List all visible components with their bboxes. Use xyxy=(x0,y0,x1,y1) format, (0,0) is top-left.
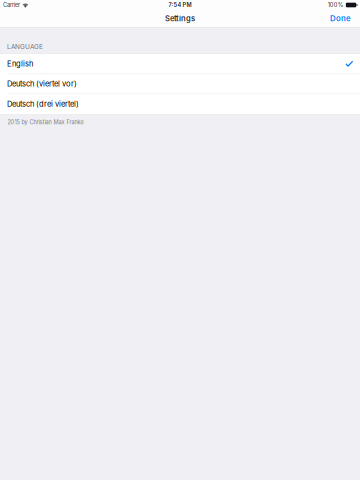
staticText: 7:54 PM xyxy=(168,2,191,8)
staticText: 100% xyxy=(328,1,344,8)
button[interactable]: English xyxy=(0,54,360,74)
staticText: Done xyxy=(330,14,351,23)
staticText: Deutsch (drei viertel) xyxy=(7,99,79,109)
staticText: 2015 by Christian Max Franke xyxy=(7,119,83,125)
staticText: LANGUAGE xyxy=(7,43,43,50)
button[interactable]: Deutsch (viertel vor) xyxy=(0,74,360,94)
staticText: English xyxy=(7,59,33,68)
staticText: Settings xyxy=(165,14,195,23)
button[interactable]: Done xyxy=(321,11,360,26)
staticText: Carrier xyxy=(3,1,20,8)
staticText: Deutsch (viertel vor) xyxy=(7,79,77,88)
button[interactable]: Deutsch (drei viertel) xyxy=(0,94,360,114)
